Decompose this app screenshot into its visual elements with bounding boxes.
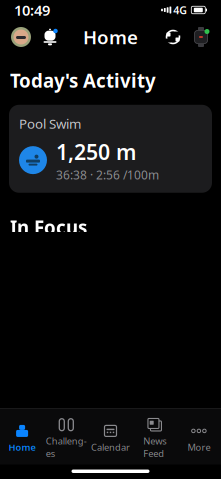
button[interactable]: News Feed <box>133 415 177 462</box>
button[interactable]: Connected watch <box>187 22 215 52</box>
staticText: 4G <box>173 3 187 17</box>
staticText: In Focus <box>10 215 87 240</box>
staticText: 12 am <box>19 444 50 458</box>
staticText: Pool Swim <box>19 115 81 132</box>
button[interactable]: Home <box>0 421 44 456</box>
staticText: 10:49 <box>14 0 50 20</box>
button[interactable]: Steps <box>9 252 206 479</box>
staticText: Challenges <box>46 435 87 459</box>
staticText: 12 am <box>165 444 196 458</box>
staticText: More <box>187 441 210 453</box>
staticText: Calendar <box>91 441 130 453</box>
staticText: Today's Activity <box>10 68 156 93</box>
button[interactable]: Challenges <box>44 415 88 462</box>
staticText: News Feed <box>143 435 166 459</box>
staticText: Home <box>9 441 36 453</box>
button[interactable]: Notifications <box>36 22 64 52</box>
staticText: Home <box>83 25 138 49</box>
button[interactable]: More <box>177 421 221 456</box>
button[interactable]: Profile <box>6 22 36 52</box>
button[interactable]: Sync <box>159 22 187 52</box>
staticText: Current Streak 2d <box>19 465 93 479</box>
staticText: 36:38 · 2:56 /100m <box>56 167 159 183</box>
button[interactable]: Pool Swim <box>9 105 212 193</box>
staticText: Longest Streak 11d <box>120 465 196 479</box>
staticText: 1,250 m <box>56 137 136 166</box>
button[interactable]: Calendar <box>88 421 133 456</box>
